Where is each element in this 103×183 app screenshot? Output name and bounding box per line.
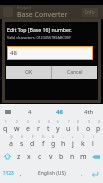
staticText: ( [83, 135, 84, 139]
staticText: Keypad [17, 5, 31, 10]
button[interactable]: 8 [73, 119, 83, 134]
staticText: OK [25, 69, 33, 76]
staticText: @ [10, 135, 13, 139]
button[interactable]: x [24, 149, 34, 164]
staticText: - [63, 135, 64, 139]
staticText: & [52, 135, 55, 139]
button[interactable]: n [67, 149, 78, 164]
button[interactable]: v [45, 149, 56, 164]
staticText: p [96, 124, 101, 134]
staticText: m [80, 152, 87, 162]
staticText: 6 [57, 120, 59, 124]
button[interactable]: & [48, 134, 58, 149]
staticText: u [66, 124, 71, 134]
button[interactable]: 4th [74, 104, 103, 119]
staticText: 3 [27, 120, 29, 124]
button[interactable]: # [16, 134, 27, 149]
staticText: % [42, 135, 45, 139]
button[interactable]: English (US) [26, 164, 77, 183]
staticText: ) [93, 135, 94, 139]
staticText: Info [85, 9, 95, 16]
button[interactable]: 9 [83, 119, 93, 134]
button[interactable]: 0 [93, 119, 103, 134]
staticText: f [42, 139, 45, 149]
staticText: + [72, 135, 74, 139]
button[interactable]: OK [6, 66, 51, 79]
button[interactable]: 6 [53, 119, 63, 134]
staticText: g [51, 139, 56, 149]
button[interactable]: 4 [15, 104, 45, 119]
button[interactable]: % [38, 134, 48, 149]
staticText: z [17, 152, 21, 162]
staticText: Edit Top [Base 16] number. [7, 26, 72, 33]
staticText: c [38, 152, 42, 162]
staticText: English (US) [38, 170, 66, 177]
button[interactable]: . [77, 164, 87, 183]
button[interactable]: 48 [7, 46, 93, 60]
staticText: s [20, 139, 24, 149]
staticText: l [92, 139, 94, 149]
button[interactable]: @ [5, 134, 16, 149]
staticText: Cancel [67, 69, 83, 76]
staticText: t [47, 124, 50, 134]
staticText: b [59, 152, 64, 162]
staticText: h [61, 139, 66, 149]
button[interactable]: c [34, 149, 45, 164]
button[interactable]: Cancel [52, 66, 97, 79]
button[interactable]: 2 [11, 119, 22, 134]
button[interactable]: 1 [0, 119, 11, 134]
button[interactable]: $ [27, 134, 38, 149]
staticText: e [26, 124, 30, 134]
button[interactable]: Enter [87, 164, 103, 183]
staticText: 48 [56, 108, 63, 116]
staticText: 4 [38, 120, 40, 124]
button[interactable]: 48 [45, 104, 74, 119]
button[interactable]: Shift [0, 149, 14, 164]
button[interactable]: 7 [63, 119, 73, 134]
staticText: ?123 [3, 170, 14, 177]
button[interactable]: z [14, 149, 24, 164]
staticText: 8 [77, 120, 79, 124]
staticText: # [21, 135, 23, 139]
staticText: j [72, 139, 74, 149]
staticText: 9 [88, 120, 90, 124]
button[interactable]: Backspace [89, 149, 103, 164]
button[interactable]: ?123 [0, 164, 16, 183]
button[interactable]: 3 [22, 119, 33, 134]
staticText: x [27, 152, 31, 162]
staticText: i [77, 124, 79, 134]
staticText: , [20, 170, 22, 178]
staticText: v [49, 152, 53, 162]
staticText: 0 [98, 120, 100, 124]
staticText: 2 [16, 120, 18, 124]
staticText: 7 [68, 120, 70, 124]
button[interactable]: m [78, 149, 89, 164]
button[interactable]: Info [85, 9, 95, 16]
button[interactable]: Keyboard options [0, 104, 15, 119]
button[interactable]: ) [88, 134, 98, 149]
staticText: o [86, 124, 91, 134]
button[interactable]: 4 [33, 119, 43, 134]
staticText: . [81, 170, 83, 178]
button[interactable]: , [16, 164, 26, 183]
staticText: 4th [84, 108, 94, 116]
button[interactable]: + [68, 134, 78, 149]
staticText: n [70, 152, 75, 162]
staticText: q [3, 124, 8, 134]
staticText: 5 [48, 120, 50, 124]
staticText: y [56, 124, 60, 134]
staticText: k [81, 139, 85, 149]
button[interactable]: 5 [43, 119, 53, 134]
button[interactable]: b [56, 149, 67, 164]
staticText: r [37, 124, 40, 134]
staticText: w [14, 124, 20, 134]
staticText: d [30, 139, 35, 149]
staticText: 4 [28, 108, 32, 116]
staticText: $ [32, 135, 34, 139]
staticText: 1 [5, 120, 7, 124]
button[interactable]: ( [78, 134, 88, 149]
staticText: 48 [10, 49, 17, 57]
button[interactable]: - [58, 134, 68, 149]
staticText: Valid characters: 0123456789ABCDEF [7, 35, 72, 40]
